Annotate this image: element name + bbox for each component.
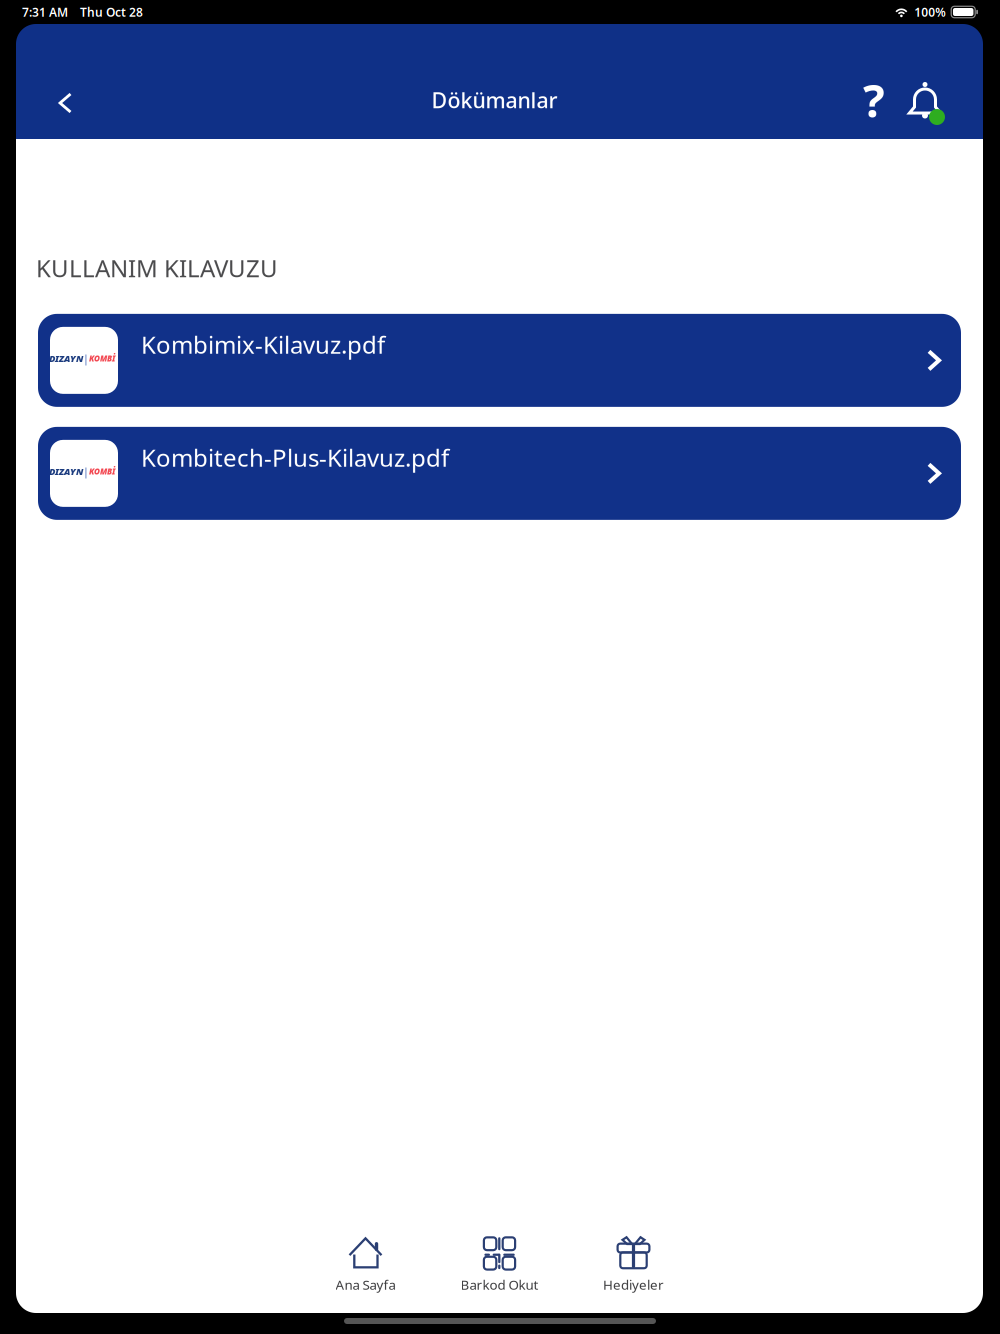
staticText: Hediyeler xyxy=(603,1276,664,1293)
staticText: 100% xyxy=(914,4,946,20)
staticText: DIZAYN xyxy=(49,465,83,478)
staticText: 7:31 AM xyxy=(22,4,68,20)
button[interactable]: DIZAYN xyxy=(38,314,961,407)
button[interactable]: Help xyxy=(854,72,894,128)
staticText: KOMBİ xyxy=(89,353,115,364)
staticText: KULLANIM KILAVUZU xyxy=(36,252,278,284)
staticText: | xyxy=(83,351,89,365)
staticText: Dökümanlar xyxy=(431,86,557,114)
button[interactable]: Ana Sayfa xyxy=(298,1231,432,1297)
button[interactable]: Back xyxy=(42,72,88,128)
staticText: Kombimix-Kilavuz.pdf xyxy=(141,328,385,360)
staticText: Barkod Okut xyxy=(460,1276,538,1293)
staticText: DIZAYN xyxy=(49,352,83,365)
button[interactable]: Notifications xyxy=(903,72,947,128)
button[interactable]: DIZAYN xyxy=(38,427,961,520)
staticText: Kombitech-Plus-Kilavuz.pdf xyxy=(141,441,449,473)
staticText: ? xyxy=(863,70,885,130)
staticText: KOMBİ xyxy=(89,466,115,477)
staticText: | xyxy=(83,464,89,478)
staticText: Ana Sayfa xyxy=(335,1276,395,1293)
staticText: Thu Oct 28 xyxy=(80,4,143,20)
button[interactable]: Barkod Okut xyxy=(432,1231,566,1297)
button[interactable]: Hediyeler xyxy=(566,1231,700,1297)
